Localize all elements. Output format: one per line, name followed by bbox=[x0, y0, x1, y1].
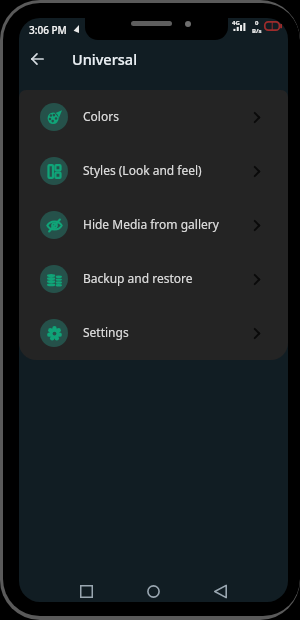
staticText: Styles (Look and feel) bbox=[83, 162, 202, 178]
button[interactable]: Backup and restore bbox=[19, 252, 288, 306]
staticText: Universal bbox=[72, 49, 138, 69]
button[interactable]: Hide Media from gallery bbox=[19, 198, 288, 252]
staticText: B/s bbox=[252, 27, 262, 35]
staticText: Backup and restore bbox=[83, 270, 193, 286]
button[interactable]: Home bbox=[139, 577, 167, 602]
button[interactable]: Styles (Look and feel) bbox=[19, 144, 288, 198]
staticText: Hide Media from gallery bbox=[83, 216, 219, 232]
staticText: 0 bbox=[255, 19, 259, 27]
staticText: 3:06 PM bbox=[29, 23, 67, 37]
button[interactable]: Recent apps bbox=[72, 577, 100, 602]
staticText: Settings bbox=[83, 324, 129, 340]
button[interactable]: Navigate up bbox=[24, 46, 50, 72]
staticText: 4G bbox=[232, 19, 240, 27]
button[interactable]: Colors bbox=[19, 90, 288, 144]
button[interactable]: Back bbox=[206, 577, 234, 602]
staticText: Colors bbox=[83, 108, 119, 124]
button[interactable]: Settings bbox=[19, 306, 288, 360]
